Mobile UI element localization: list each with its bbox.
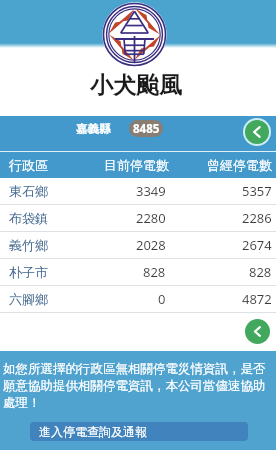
staticText: 小犬颱風 <box>90 71 182 100</box>
staticText: 828 <box>249 263 272 281</box>
staticText: 8485 <box>133 121 160 137</box>
staticText: 朴子市 <box>9 264 48 280</box>
staticText: 2286 <box>242 209 272 227</box>
button[interactable]: 義竹鄉 <box>0 232 276 259</box>
staticText: 如您所選擇的行政區無相關停電災情資訊，是否 願意協助提供相關停電資訊，本公司當儘… <box>3 361 266 411</box>
staticText: 0 <box>158 290 166 308</box>
staticText: 義竹鄉 <box>9 237 48 253</box>
staticText: 行政區 <box>9 157 48 173</box>
staticText: 目前停電數 <box>104 157 169 173</box>
staticText: 嘉義縣 <box>76 122 111 136</box>
staticText: 3349 <box>136 182 166 200</box>
staticText: 六腳鄉 <box>9 291 48 307</box>
staticText: 4872 <box>242 290 272 308</box>
staticText: 進入停電查詢及通報 <box>39 424 147 439</box>
staticText: 5357 <box>242 182 272 200</box>
staticText: 曾經停電數 <box>207 157 272 173</box>
staticText: 2028 <box>136 236 166 254</box>
staticText: 828 <box>143 263 166 281</box>
button[interactable]: 六腳鄉 <box>0 286 276 313</box>
staticText: 布袋鎮 <box>9 210 48 226</box>
button[interactable]: 布袋鎮 <box>0 205 276 232</box>
button[interactable]: 東石鄉 <box>0 178 276 205</box>
staticText: 2674 <box>242 236 272 254</box>
staticText: 2280 <box>136 209 166 227</box>
button[interactable]: 進入停電查詢及通報 <box>30 422 248 441</box>
button[interactable]: Previous county <box>243 118 271 146</box>
staticText: 東石鄉 <box>9 183 48 199</box>
button[interactable]: Previous page <box>245 319 270 344</box>
button[interactable]: 朴子市 <box>0 259 276 286</box>
